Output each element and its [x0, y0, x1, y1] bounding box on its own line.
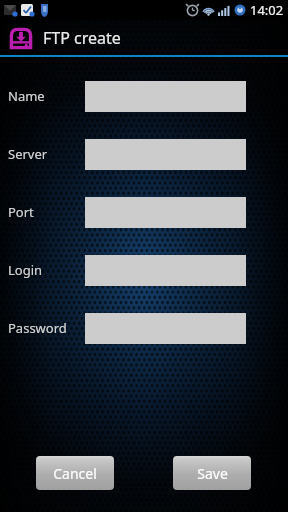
staticText: Port [8, 203, 34, 221]
staticText: Server [8, 145, 48, 163]
staticText: Password [8, 319, 67, 337]
other: Wi-Fi [202, 5, 215, 16]
other: Alarm [186, 4, 199, 17]
staticText: 14:02 [250, 1, 284, 19]
staticText: Name [8, 87, 45, 105]
staticText: Cancel [53, 464, 97, 483]
staticText: Login [8, 261, 43, 279]
other: Signal [218, 5, 231, 16]
button[interactable]: Cancel [36, 456, 114, 490]
other: Battery [234, 4, 246, 16]
staticText: FTP create [43, 27, 121, 49]
button[interactable]: Save [173, 456, 251, 490]
staticText: Save [197, 464, 228, 483]
